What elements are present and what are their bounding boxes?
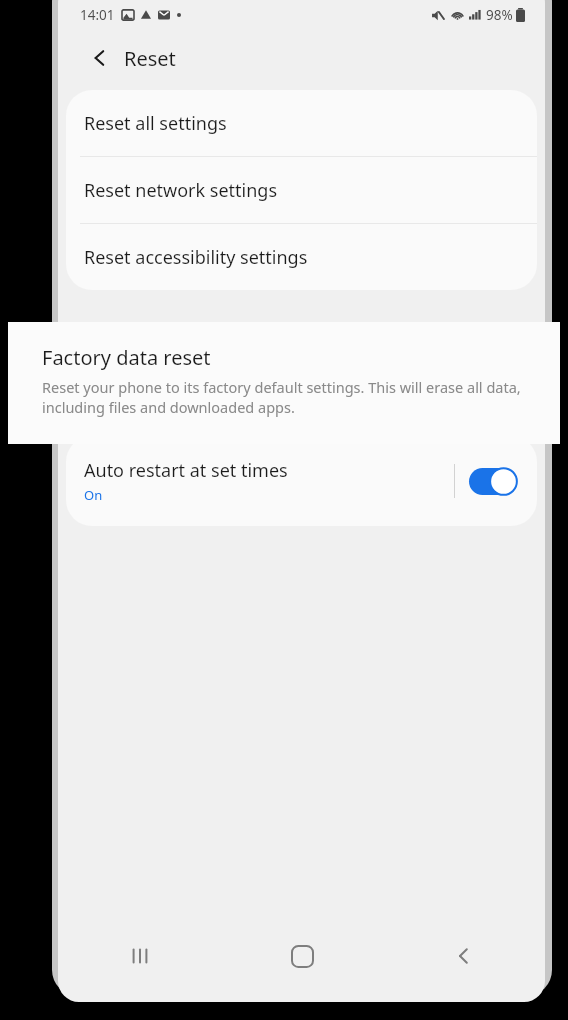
staticText: Reset accessibility settings bbox=[84, 245, 308, 270]
button[interactable]: Reset all settings bbox=[66, 90, 537, 156]
button[interactable]: Reset accessibility settings bbox=[66, 224, 537, 290]
button[interactable]: Recent apps bbox=[58, 928, 221, 984]
staticText: 98% bbox=[486, 6, 513, 24]
staticText: On bbox=[84, 486, 103, 504]
staticText: Reset bbox=[124, 45, 176, 72]
button[interactable]: Home bbox=[221, 928, 383, 984]
staticText: Factory data reset bbox=[42, 344, 211, 371]
button[interactable]: Factory data reset bbox=[8, 322, 560, 444]
button[interactable]: Reset network settings bbox=[66, 157, 537, 223]
button[interactable]: Back bbox=[80, 38, 120, 78]
button[interactable]: Auto restart toggle, On bbox=[467, 461, 519, 501]
staticText: 14:01 bbox=[80, 6, 115, 24]
button[interactable]: Back bbox=[383, 928, 545, 984]
button[interactable]: Auto restart at set times bbox=[66, 436, 537, 526]
staticText: Reset network settings bbox=[84, 178, 278, 203]
staticText: Reset all settings bbox=[84, 111, 227, 136]
staticText: Reset your phone to its factory default … bbox=[42, 377, 526, 418]
staticText: Auto restart at set times bbox=[84, 458, 288, 483]
